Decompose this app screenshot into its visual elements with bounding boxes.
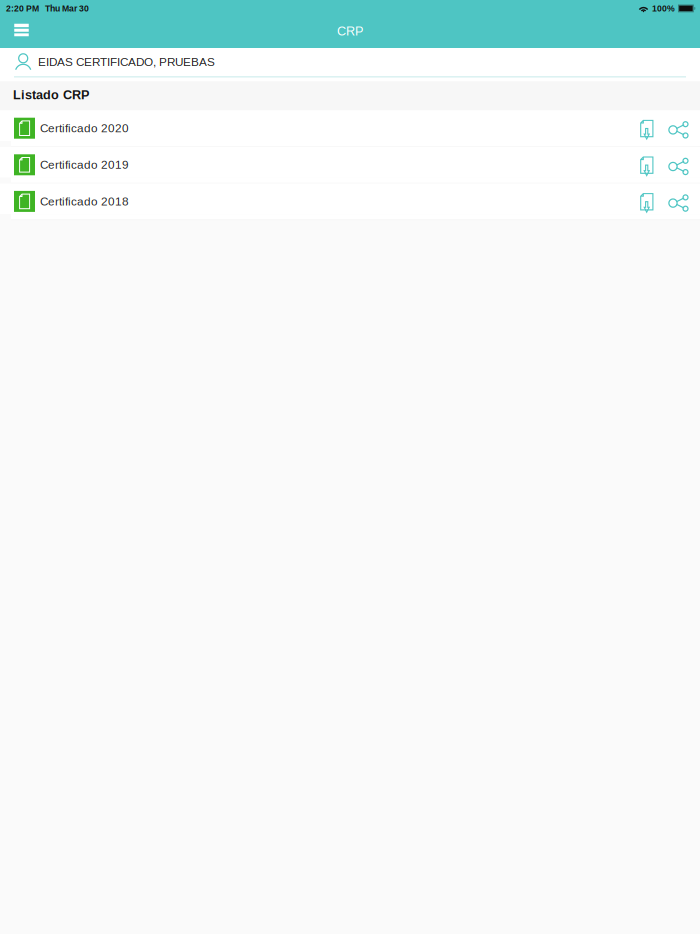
staticText: Certificado 2018 [40, 195, 129, 208]
button[interactable]: Sign Certificado 2020 [630, 110, 664, 146]
staticText: Thu Mar 30 [45, 4, 89, 13]
button[interactable]: Share Certificado 2018 [664, 183, 692, 219]
staticText: 100% [652, 4, 675, 13]
staticText: 2:20 PM [6, 4, 39, 13]
staticText: Certificado 2019 [40, 158, 129, 171]
button[interactable]: Share Certificado 2019 [664, 147, 692, 183]
staticText: Certificado 2020 [40, 122, 129, 135]
button[interactable]: Menu [6, 17, 37, 48]
button[interactable]: Share Certificado 2020 [664, 110, 692, 146]
staticText: EIDAS CERTIFICADO, PRUEBAS [38, 55, 215, 68]
button[interactable]: Sign Certificado 2018 [630, 183, 664, 219]
staticText: CRP [337, 24, 363, 38]
staticText: Listado CRP [13, 88, 89, 102]
button[interactable]: Sign Certificado 2019 [630, 147, 664, 183]
